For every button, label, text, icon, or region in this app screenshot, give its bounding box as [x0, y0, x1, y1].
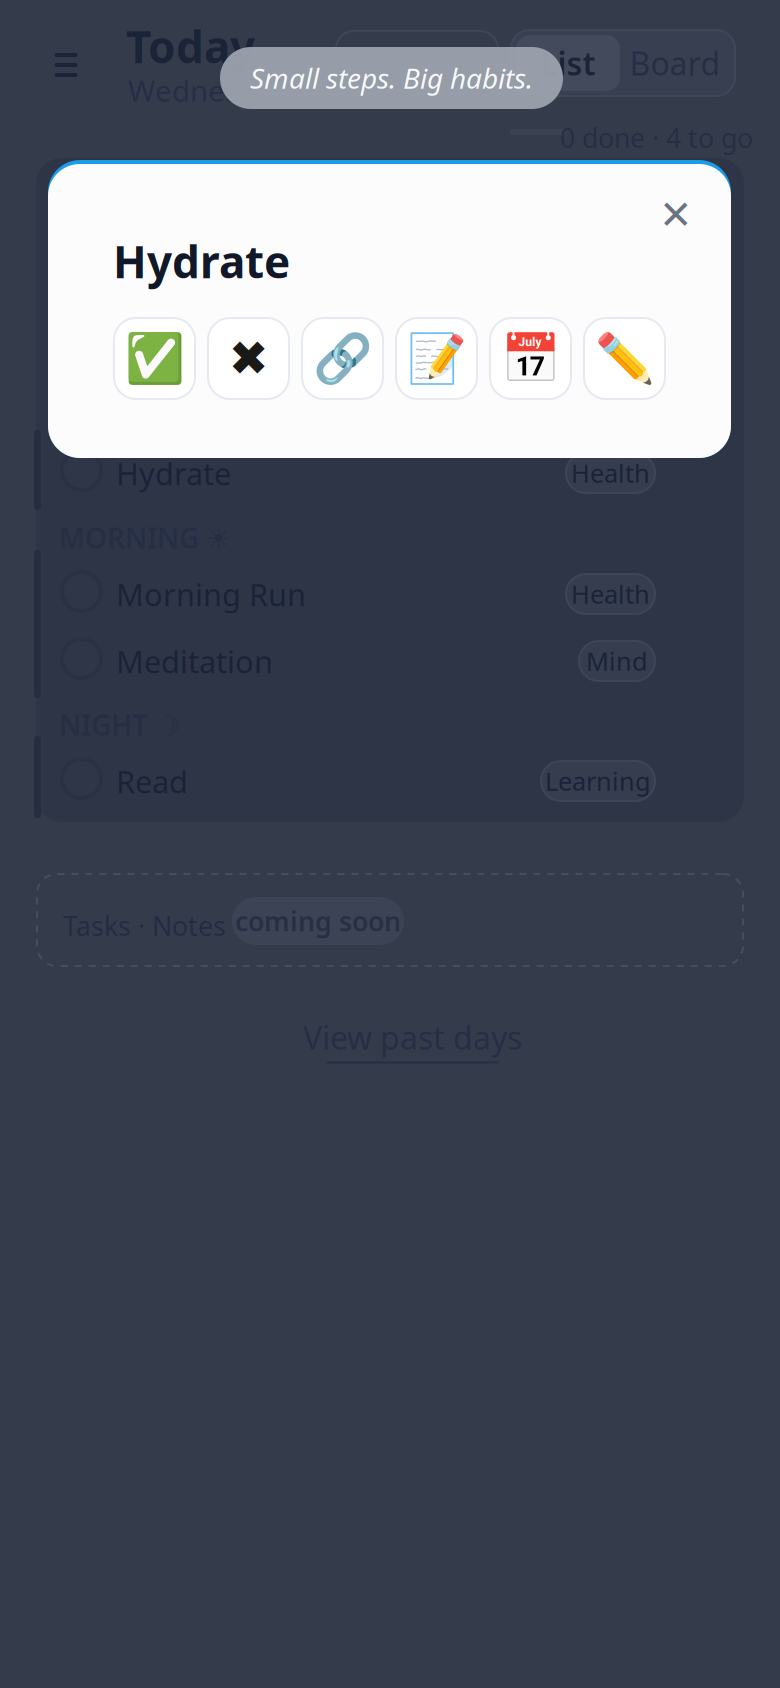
button[interactable]: Mark done — [114, 318, 195, 399]
staticText: Today — [126, 17, 255, 75]
staticText: Board — [629, 42, 720, 84]
staticText: Learning — [545, 764, 651, 798]
button[interactable]: List — [516, 35, 620, 91]
button[interactable]: Meditation — [36, 627, 744, 694]
staticText: ✖ — [228, 331, 268, 386]
button[interactable]: Edit — [584, 318, 665, 399]
staticText: ✅ — [124, 331, 184, 386]
staticText: Morning Run — [116, 574, 306, 615]
button[interactable]: Copy link — [302, 318, 383, 399]
button[interactable]: Schedule — [490, 318, 571, 399]
staticText: Hydrate — [113, 232, 290, 290]
staticText: List — [540, 42, 595, 84]
staticText: Health — [571, 577, 650, 611]
staticText: 📅 — [500, 331, 560, 386]
button[interactable]: Board — [620, 35, 730, 91]
staticText: Small steps. Big habits. — [250, 59, 533, 97]
staticText: Hydrate — [116, 453, 231, 494]
staticText: 📝 — [406, 331, 466, 386]
button[interactable]: Read — [36, 747, 744, 814]
staticText: 0 done · 4 to go — [560, 120, 753, 155]
staticText: ✏️ — [594, 331, 654, 386]
staticText: View past days — [303, 1016, 522, 1058]
staticText: Meditation — [116, 641, 273, 682]
button[interactable]: View past days — [303, 1016, 522, 1063]
staticText: Health — [571, 456, 650, 490]
staticText: Mind — [586, 644, 648, 678]
button[interactable]: Hydrate — [36, 439, 744, 506]
button[interactable]: Morning Run — [36, 560, 744, 627]
button[interactable]: ◎ — [336, 31, 498, 97]
staticText: coming soon — [235, 903, 401, 939]
staticText: 🔗 — [312, 331, 372, 386]
staticText: Tasks · Notes — [63, 908, 226, 943]
button[interactable]: Menu — [43, 42, 89, 88]
staticText: Focus — [392, 44, 476, 84]
staticText: ◎ — [357, 47, 383, 81]
button[interactable]: Close — [650, 189, 702, 241]
button[interactable]: Add note — [396, 318, 477, 399]
staticText: MORNING ☀ — [59, 519, 231, 556]
staticText: Wednesday, Apr 1 — [128, 71, 377, 110]
button[interactable]: Skip — [208, 318, 289, 399]
staticText: Read — [116, 761, 188, 802]
staticText: ✕ — [659, 192, 693, 238]
